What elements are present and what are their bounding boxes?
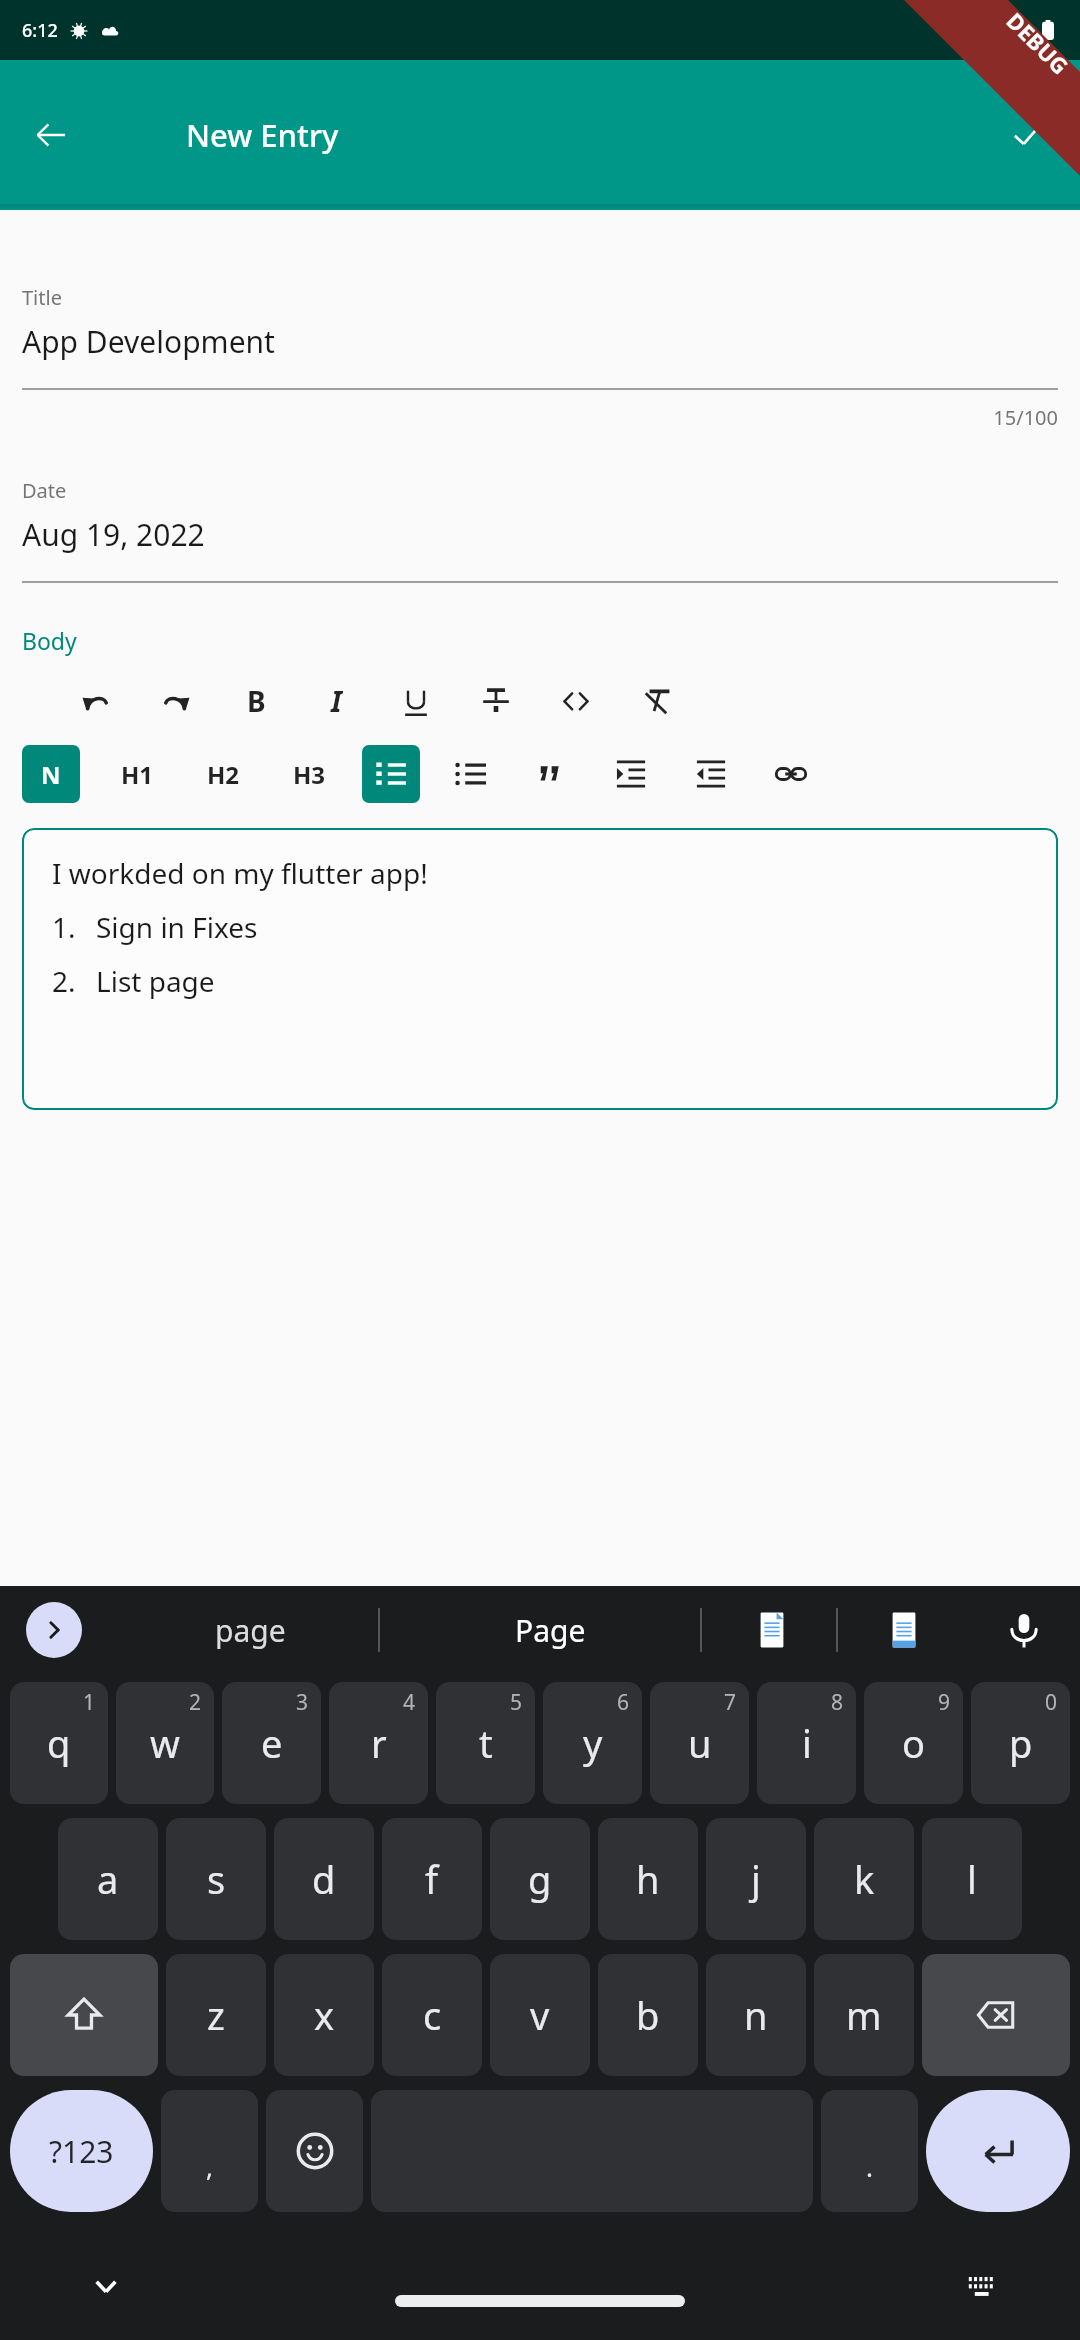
staticText: 9	[938, 1688, 951, 1717]
staticText: 0	[1045, 1688, 1058, 1717]
staticText: f	[425, 1853, 439, 1905]
staticText: H3	[293, 758, 326, 791]
button[interactable]: a	[58, 1818, 158, 1940]
button[interactable]: Code block	[550, 675, 602, 727]
staticText: a	[97, 1853, 119, 1905]
button[interactable]: Aug 19, 2022	[22, 514, 1058, 555]
button[interactable]: More suggestions	[26, 1602, 82, 1658]
staticText: B	[247, 682, 266, 720]
button[interactable]: q	[10, 1682, 108, 1804]
button[interactable]: l	[922, 1818, 1022, 1940]
button[interactable]: H2	[194, 745, 252, 803]
button[interactable]: w	[116, 1682, 214, 1804]
button[interactable]: Symbols	[10, 2090, 153, 2212]
button[interactable]: f	[382, 1818, 482, 1940]
button[interactable]: Enter	[926, 2090, 1070, 2212]
button[interactable]: .	[821, 2090, 918, 2212]
staticText: Page	[515, 1610, 586, 1651]
button[interactable]: N	[22, 745, 80, 803]
button[interactable]: Undo	[70, 675, 122, 727]
button[interactable]: Strikethrough	[470, 675, 522, 727]
button[interactable]: k	[814, 1818, 914, 1940]
button[interactable]: Backspace	[922, 1954, 1070, 2076]
button[interactable]: x	[274, 1954, 374, 2076]
button[interactable]: Hide keyboard	[76, 2256, 136, 2316]
staticText: d	[312, 1853, 336, 1905]
button[interactable]: Numbered list	[362, 745, 420, 803]
button[interactable]: Bold	[230, 675, 282, 727]
button[interactable]: z	[166, 1954, 266, 2076]
staticText: 1	[83, 1688, 96, 1717]
button[interactable]: Bullet list	[442, 745, 500, 803]
button[interactable]: Block quote	[522, 745, 580, 803]
staticText: Date	[22, 477, 67, 504]
staticText: g	[528, 1853, 552, 1905]
button[interactable]: r	[329, 1682, 428, 1804]
button[interactable]: H1	[108, 745, 166, 803]
staticText: N	[41, 758, 61, 791]
staticText: h	[636, 1853, 660, 1905]
staticText: r	[371, 1717, 387, 1769]
button[interactable]: Voice input	[988, 1594, 1060, 1666]
staticText: 1.	[52, 908, 76, 946]
button[interactable]: Shift	[10, 1954, 158, 2076]
staticText: 2	[189, 1688, 202, 1717]
staticText: 2.	[52, 962, 76, 1000]
button[interactable]: i	[757, 1682, 856, 1804]
button[interactable]: Translate	[868, 1594, 940, 1666]
button[interactable]: y	[543, 1682, 642, 1804]
button[interactable]: s	[166, 1818, 266, 1940]
button[interactable]: b	[598, 1954, 698, 2076]
staticText: y	[583, 1717, 603, 1769]
staticText: Aug 19, 2022	[22, 514, 205, 555]
button[interactable]: Emoji	[266, 2090, 363, 2212]
button[interactable]: d	[274, 1818, 374, 1940]
button[interactable]: Increase indent	[602, 745, 660, 803]
staticText: I	[331, 682, 342, 720]
staticText: page	[215, 1610, 286, 1651]
button[interactable]: Italic	[310, 675, 362, 727]
button[interactable]: Save entry	[998, 106, 1056, 164]
staticText: c	[423, 1989, 442, 2041]
button[interactable]: Insert link	[762, 745, 820, 803]
staticText: 8	[831, 1688, 844, 1717]
button[interactable]: page	[140, 1586, 360, 1674]
button[interactable]: v	[490, 1954, 590, 2076]
button[interactable]: H3	[280, 745, 338, 803]
staticText: H2	[207, 758, 240, 791]
button[interactable]: Clipboard	[736, 1594, 808, 1666]
button[interactable]: Decrease indent	[682, 745, 740, 803]
button[interactable]: j	[706, 1818, 806, 1940]
staticText: App Development	[22, 321, 275, 362]
staticText: Title	[22, 284, 62, 311]
button[interactable]: Home	[395, 2295, 685, 2307]
button[interactable]: c	[382, 1954, 482, 2076]
staticText: l	[967, 1853, 977, 1905]
staticText: w	[150, 1717, 180, 1769]
staticText: j	[751, 1853, 761, 1905]
button[interactable]: e	[222, 1682, 321, 1804]
button[interactable]: Clear formatting	[630, 675, 682, 727]
staticText: ?123	[49, 2131, 114, 2172]
button[interactable]: h	[598, 1818, 698, 1940]
button[interactable]: Redo	[150, 675, 202, 727]
button[interactable]: t	[436, 1682, 535, 1804]
staticText: k	[854, 1853, 875, 1905]
button[interactable]: Page	[430, 1586, 670, 1674]
button[interactable]: Back	[22, 106, 80, 164]
button[interactable]: g	[490, 1818, 590, 1940]
button[interactable]: Underline	[390, 675, 442, 727]
button[interactable]: n	[706, 1954, 806, 2076]
button[interactable]: ,	[161, 2090, 258, 2212]
staticText: u	[688, 1717, 712, 1769]
button[interactable]: m	[814, 1954, 914, 2076]
button[interactable]: o	[864, 1682, 963, 1804]
staticText: x	[314, 1989, 335, 2041]
button[interactable]: I workded on my flutter app!	[22, 828, 1058, 1110]
staticText: 15/100	[22, 404, 1058, 431]
button[interactable]: u	[650, 1682, 749, 1804]
button[interactable]: Switch keyboard	[952, 2256, 1012, 2316]
staticText: i	[802, 1717, 812, 1769]
button[interactable]: p	[971, 1682, 1070, 1804]
